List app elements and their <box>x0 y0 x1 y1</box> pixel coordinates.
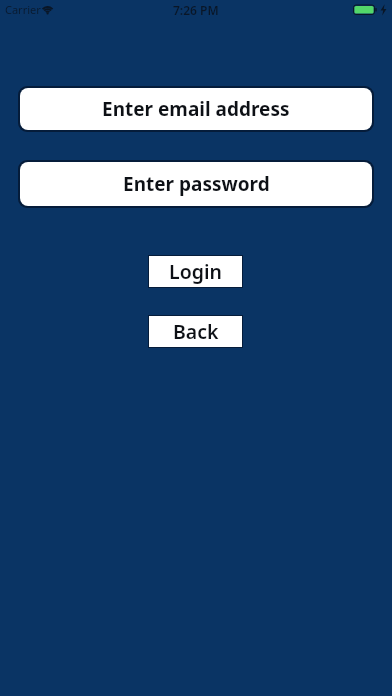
staticText: Login <box>169 258 222 285</box>
button[interactable]: Enter email address <box>18 86 374 132</box>
button[interactable]: Back <box>148 315 243 348</box>
staticText: Carrier <box>5 2 41 17</box>
staticText: 7:26 PM <box>173 2 219 18</box>
staticText: Enter password <box>123 171 270 197</box>
button[interactable]: Enter password <box>18 160 374 208</box>
staticText: Enter email address <box>102 96 290 122</box>
staticText: Back <box>173 318 219 345</box>
button[interactable]: Login <box>148 255 243 288</box>
